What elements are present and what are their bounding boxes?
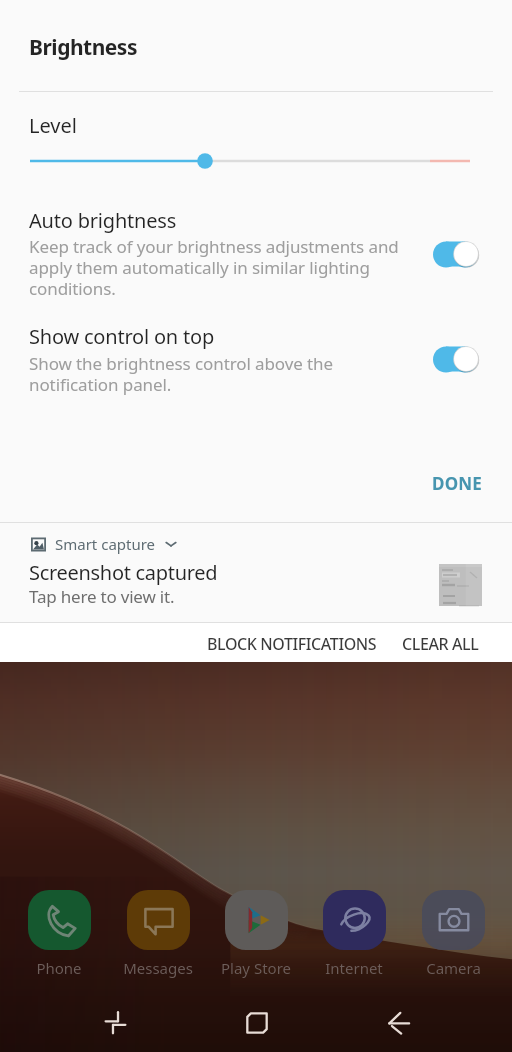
button[interactable]: Camera [414,890,492,978]
staticText: Tap here to view it. [29,585,175,608]
button[interactable]: Toggle [433,346,479,372]
button[interactable]: Back [328,996,470,1049]
button[interactable]: Smart capture [31,534,177,554]
staticText: BLOCK NOTIFICATIONS [207,633,377,655]
staticText: Keep track of your brightness adjustment… [29,235,399,300]
staticText: Camera [426,958,481,978]
button[interactable]: BLOCK NOTIFICATIONS [199,627,385,661]
staticText: Internet [325,958,383,978]
staticText: Smart capture [55,534,156,554]
button[interactable]: Home [186,996,328,1049]
button[interactable]: Internet [315,890,393,978]
button[interactable]: CLEAR ALL [394,627,487,661]
staticText: Messages [123,958,193,978]
staticText: Phone [36,958,82,978]
staticText: Auto brightness [29,207,177,234]
staticText: Show the brightness control above the no… [29,352,333,396]
button[interactable]: Phone [20,890,98,978]
button[interactable]: Toggle [433,241,479,267]
button[interactable]: Play Store [217,890,295,978]
button[interactable]: DONE [424,466,491,501]
staticText: Show control on top [29,323,215,350]
button[interactable]: Recents [44,996,186,1049]
staticText: Play Store [221,958,291,978]
button[interactable]: Messages [119,890,197,978]
staticText: Screenshot captured [29,559,218,586]
staticText: Brightness [29,33,137,62]
staticText: Level [29,112,77,139]
staticText: CLEAR ALL [402,633,479,655]
staticText: DONE [432,472,483,495]
